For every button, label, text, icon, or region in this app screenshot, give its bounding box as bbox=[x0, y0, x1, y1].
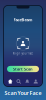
staticText: Scan Your Face bbox=[4, 89, 41, 97]
button[interactable]: Profile bbox=[31, 78, 40, 85]
button[interactable]: Start Scan bbox=[7, 66, 39, 72]
button[interactable]: Scan Your Face bbox=[1, 89, 45, 97]
button[interactable]: Search bbox=[14, 78, 23, 85]
staticText: Align your face bbox=[12, 52, 33, 55]
button[interactable]: Home bbox=[6, 78, 14, 85]
button[interactable]: Alerts bbox=[23, 78, 31, 85]
staticText: FaceBeam bbox=[13, 17, 32, 22]
staticText: Start Scan bbox=[13, 66, 33, 72]
